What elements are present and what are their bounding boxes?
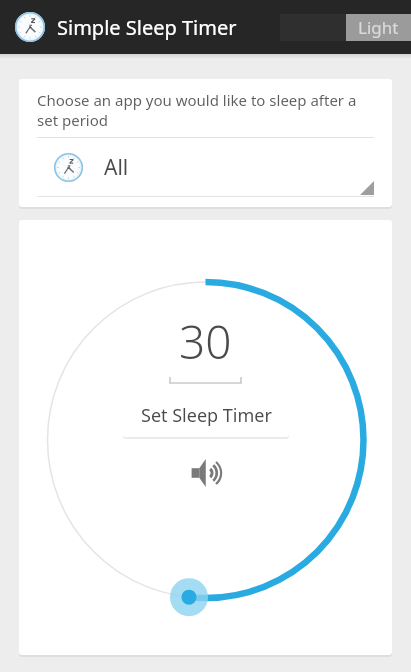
staticText: Simple Sleep Timer: [57, 14, 237, 41]
staticText: All: [104, 153, 129, 182]
button[interactable]: Light: [346, 14, 411, 41]
staticText: Set Sleep Timer: [141, 403, 272, 428]
staticText: Light: [358, 16, 399, 39]
button[interactable]: Set Sleep Timer: [123, 394, 289, 437]
staticText: Choose an app you would like to sleep af…: [37, 90, 374, 130]
button[interactable]: Volume: [185, 452, 227, 494]
staticText: 30: [179, 310, 232, 373]
button[interactable]: All: [19, 138, 392, 196]
